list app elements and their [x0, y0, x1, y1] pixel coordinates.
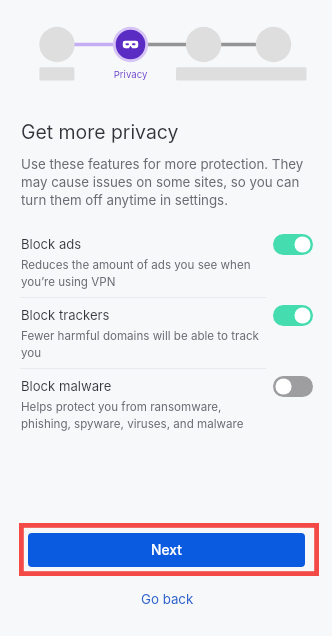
other: Block trackers — [273, 305, 313, 326]
other: Block malware — [273, 376, 313, 397]
other: Block ads — [273, 234, 313, 255]
staticText: Fewer harmful domains will be able to tr… — [21, 326, 259, 360]
staticText: Block malware — [21, 380, 112, 394]
staticText: Go back — [141, 590, 194, 608]
staticText: Reduces the amount of ads you see when y… — [21, 255, 251, 289]
button[interactable]: Block ads — [0, 229, 332, 290]
staticText: Next — [151, 542, 182, 558]
staticText: Use these features for more protection. … — [21, 154, 304, 208]
button[interactable]: Next — [28, 533, 305, 567]
staticText: Get more privacy — [21, 122, 179, 143]
staticText: Privacy — [70, 68, 191, 81]
button[interactable]: Block malware — [0, 371, 332, 431]
button[interactable]: Block trackers — [0, 300, 332, 368]
button[interactable]: Go back — [1, 587, 332, 611]
staticText: Helps protect you from ransomware, phish… — [21, 397, 244, 431]
staticText: Block ads — [21, 238, 82, 252]
staticText: Block trackers — [21, 309, 110, 323]
